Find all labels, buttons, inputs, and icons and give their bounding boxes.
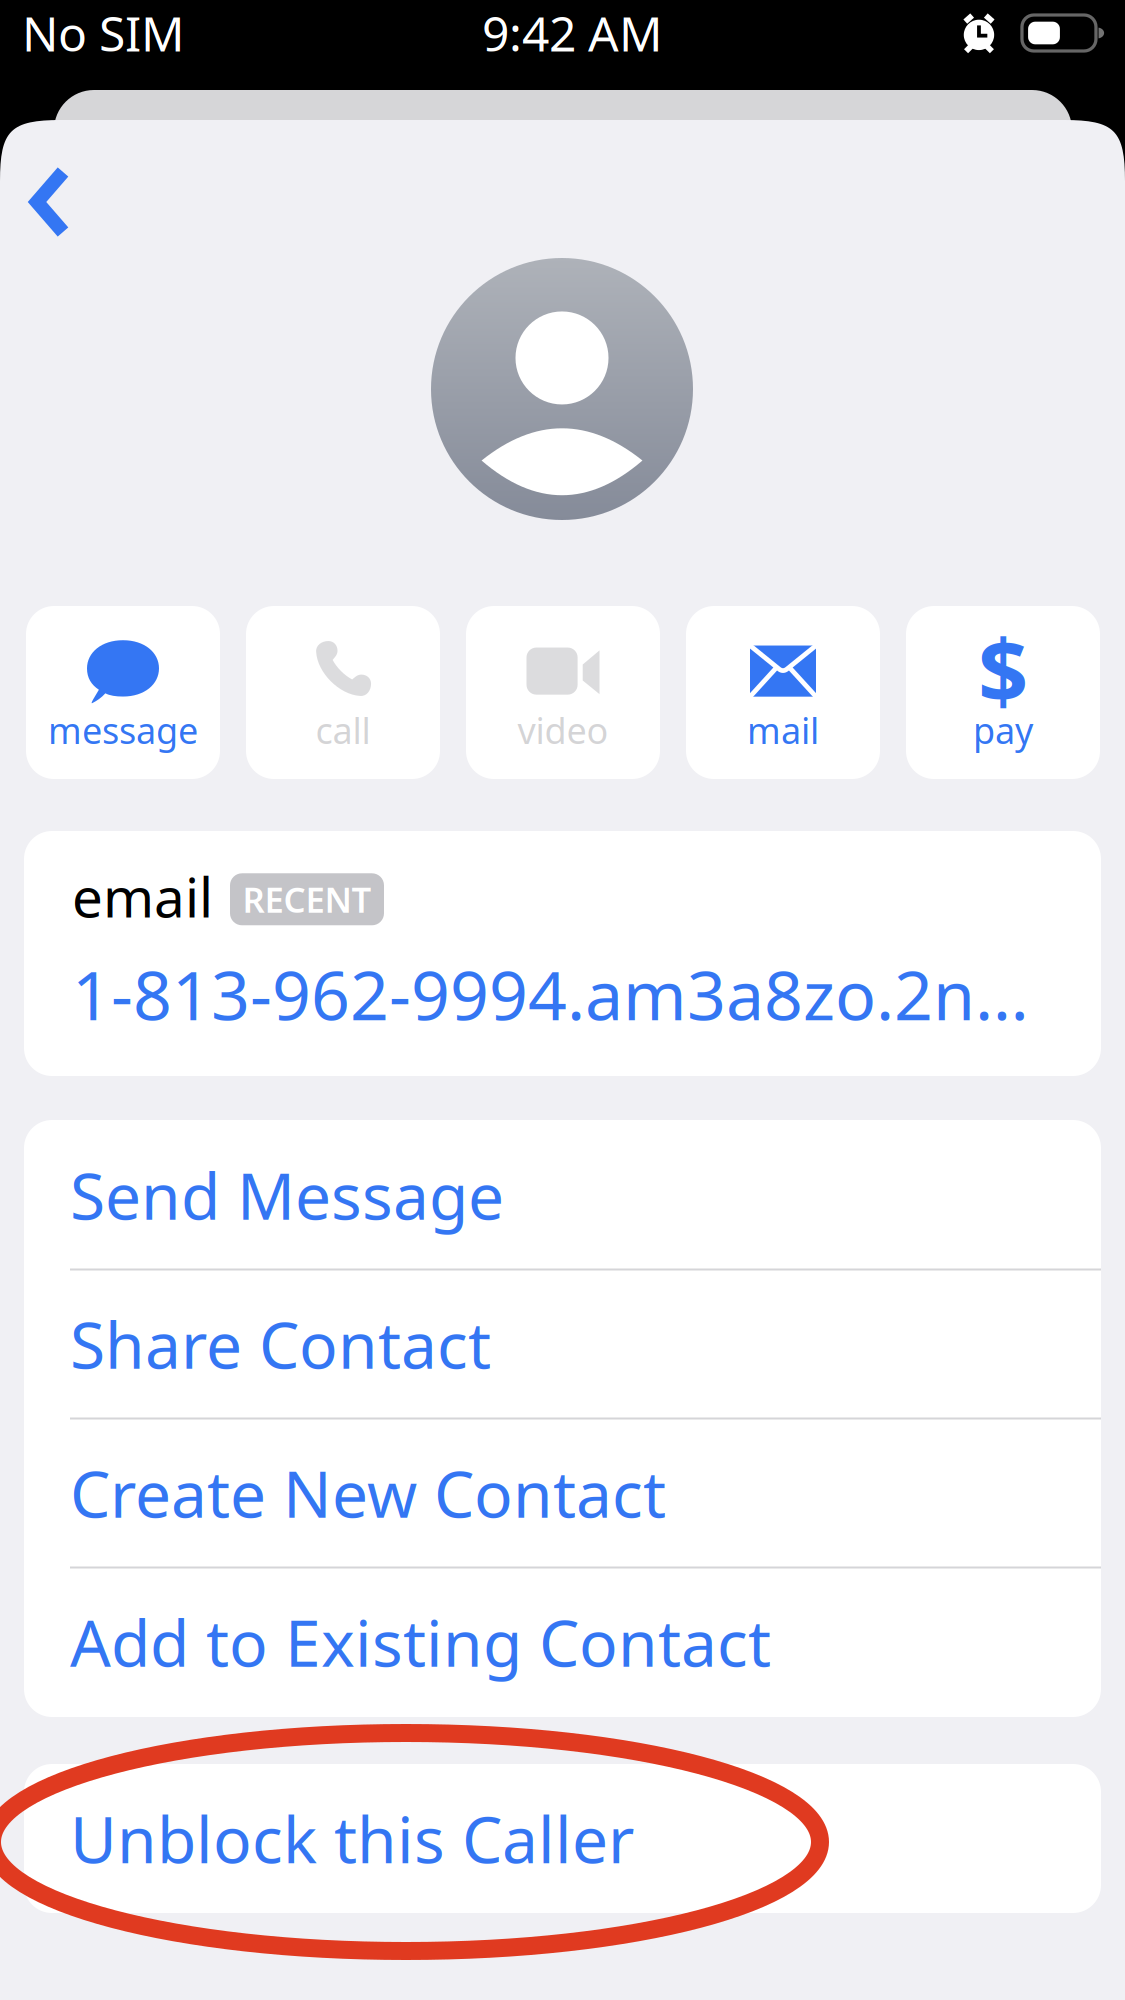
- button[interactable]: Create New Contact: [24, 1419, 1101, 1566]
- staticText: No SIM: [22, 1, 185, 65]
- staticText: mail: [747, 706, 819, 754]
- staticText: Unblock this Caller: [70, 1796, 634, 1881]
- staticText: Share Contact: [70, 1301, 491, 1386]
- button[interactable]: Unblock this Caller: [24, 1765, 1101, 1912]
- button[interactable]: $: [906, 606, 1100, 779]
- button[interactable]: Back: [0, 146, 106, 258]
- staticText: email: [72, 860, 213, 933]
- staticText: call: [315, 706, 370, 754]
- button[interactable]: email: [24, 831, 1101, 1076]
- staticText: 9:42 AM: [482, 1, 663, 65]
- button[interactable]: Share Contact: [24, 1270, 1101, 1417]
- staticText: $: [978, 611, 1028, 728]
- staticText: RECENT: [242, 876, 371, 922]
- button[interactable]: message: [26, 606, 220, 779]
- staticText: 1-813-962-9994.am3a8zo.2n…: [72, 949, 1029, 1039]
- button[interactable]: mail: [686, 606, 880, 779]
- button[interactable]: Send Message: [24, 1121, 1101, 1268]
- staticText: Add to Existing Contact: [70, 1599, 771, 1684]
- staticText: message: [48, 706, 198, 754]
- staticText: Send Message: [70, 1152, 504, 1237]
- button[interactable]: Add to Existing Contact: [24, 1568, 1101, 1715]
- button[interactable]: call: [246, 606, 440, 779]
- button[interactable]: video: [466, 606, 660, 779]
- staticText: Create New Contact: [70, 1450, 666, 1535]
- staticText: video: [517, 706, 608, 754]
- staticText: pay: [973, 706, 1033, 754]
